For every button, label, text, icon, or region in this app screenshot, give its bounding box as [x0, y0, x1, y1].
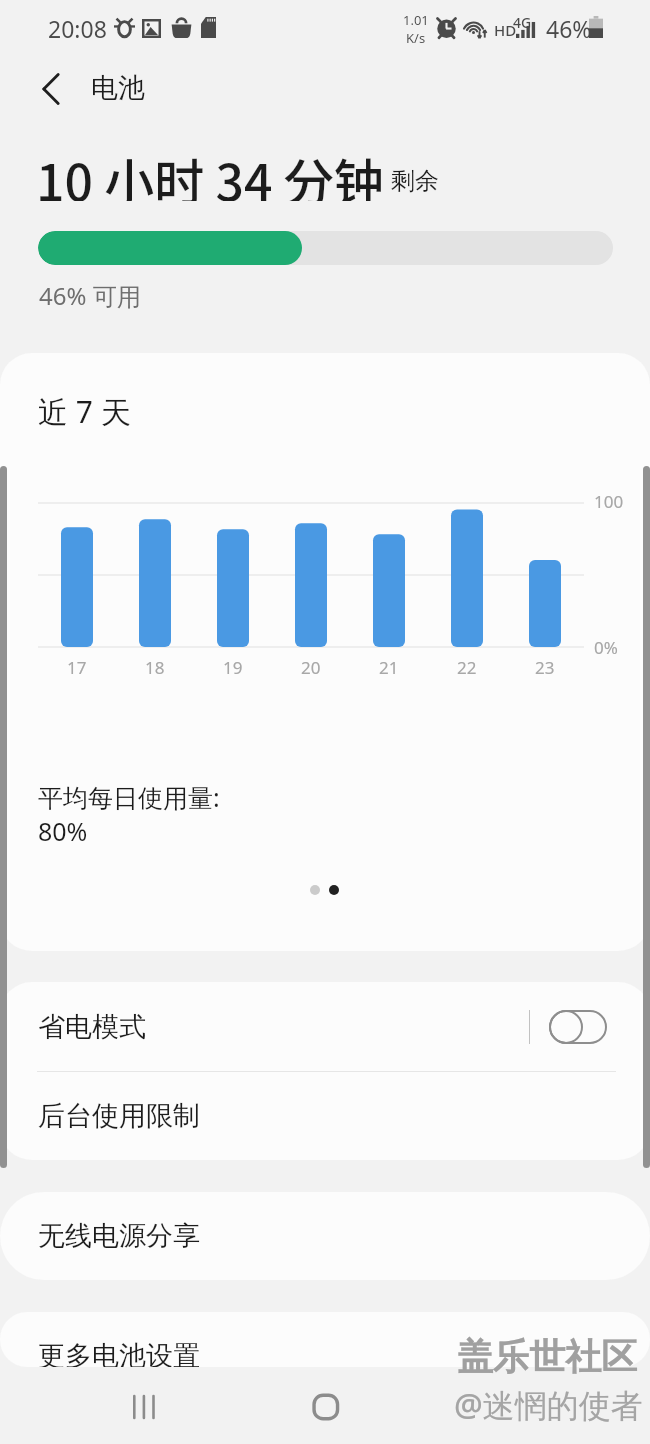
staticText: 100	[594, 490, 624, 513]
staticText: 21	[379, 656, 399, 679]
staticText: 平均每日使用量:	[38, 780, 220, 814]
button[interactable]: Power saving mode toggle	[549, 1010, 607, 1044]
button[interactable]: 后台使用限制	[0, 1072, 650, 1160]
staticText: 20:08	[48, 13, 107, 44]
button[interactable]: 省电模式	[0, 982, 650, 1071]
staticText: 0%	[594, 636, 618, 659]
staticText: 剩余	[391, 166, 439, 196]
staticText: 46% 可用	[39, 279, 141, 312]
staticText: 电池	[91, 71, 145, 105]
staticText: 17	[67, 656, 87, 679]
staticText: 22	[457, 656, 477, 679]
button[interactable]: Home	[301, 1382, 351, 1432]
staticText: HD	[494, 20, 517, 40]
button[interactable]: Recent apps	[119, 1382, 169, 1432]
staticText: 4G	[513, 13, 532, 32]
button[interactable]: Back	[480, 1382, 530, 1432]
staticText: 无线电源分享	[38, 1219, 200, 1253]
button[interactable]: 无线电源分享	[0, 1192, 650, 1280]
button[interactable]: 更多电池设置	[0, 1312, 650, 1367]
staticText: 更多电池设置	[38, 1339, 200, 1367]
staticText: 近 7 天	[38, 391, 131, 432]
staticText: 19	[223, 656, 243, 679]
staticText: 省电模式	[38, 1010, 146, 1044]
staticText: 18	[145, 656, 165, 679]
button[interactable]: Back	[30, 67, 74, 111]
staticText: 1.01	[403, 11, 429, 29]
staticText: K/s	[406, 29, 426, 47]
staticText: 20	[301, 656, 321, 679]
staticText: 盖乐世社区	[457, 1334, 637, 1379]
staticText: @迷惘的使者	[454, 1383, 643, 1427]
staticText: 10 小时 34 分钟	[36, 143, 384, 201]
staticText: 80%	[38, 814, 88, 848]
staticText: 46%	[546, 13, 592, 44]
staticText: 23	[535, 656, 555, 679]
staticText: 后台使用限制	[38, 1099, 200, 1133]
